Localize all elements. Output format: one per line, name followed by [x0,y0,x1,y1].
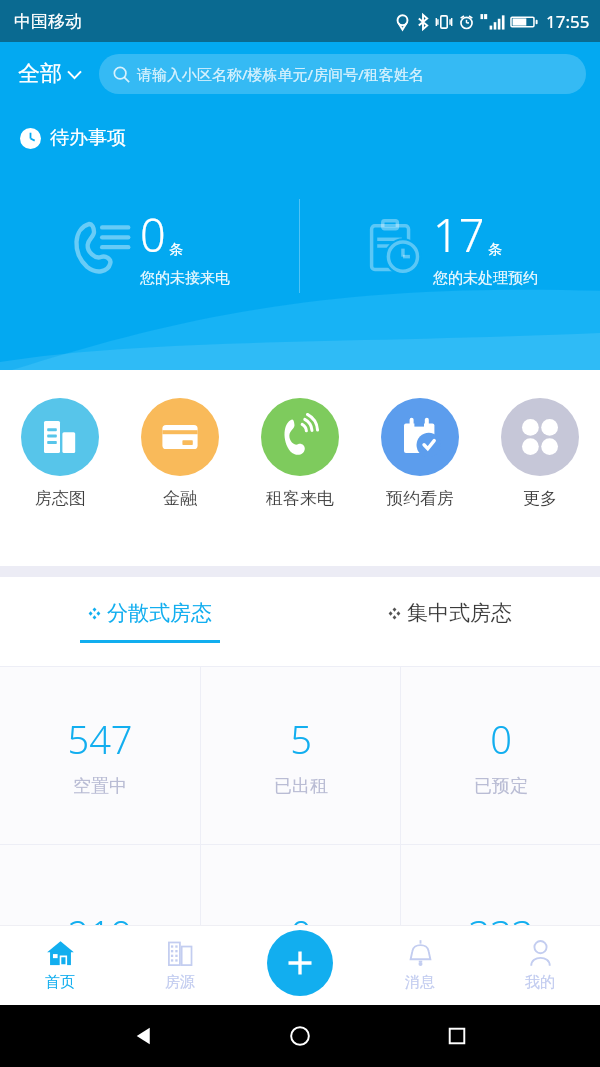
staticText: 更多 [523,488,557,509]
staticText: 空置中 [73,775,127,798]
button[interactable]: 房态图 [0,394,120,513]
button[interactable]: 5 [201,667,400,844]
staticText: 0 [140,204,166,265]
staticText: 房态图 [35,488,86,509]
staticText: 17:55 [546,10,590,33]
button[interactable]: 0 [0,198,299,294]
staticText: 我的 [525,973,555,992]
staticText: 您的未处理预约 [433,269,538,288]
staticText: 首页 [45,973,75,992]
other: Back [131,1023,157,1049]
button[interactable]: 房源 [120,925,240,1005]
button[interactable]: 请输入小区名称/楼栋单元/房间号/租客姓名 [99,54,586,94]
button[interactable]: 更多 [480,394,600,513]
staticText: 全部 [18,60,62,88]
staticText: 547 [67,713,133,765]
button[interactable]: 219 [0,845,200,1022]
button[interactable]: 我的 [480,925,600,1005]
staticText: 待办事项 [50,126,126,150]
button[interactable]: 333 [401,845,600,1022]
button[interactable]: 0 [401,667,600,844]
staticText: 5 [290,713,312,765]
button[interactable]: 首页 [0,925,120,1005]
staticText: 您的未接来电 [140,269,230,288]
button[interactable]: 547 [0,667,200,844]
staticText: 219 [67,908,133,960]
other: Home [287,1023,313,1049]
staticText: 333 [468,908,534,960]
staticText: 已出租 [274,775,328,798]
staticText: 分散式房态 [107,600,212,626]
button[interactable]: 消息 [360,925,480,1005]
button[interactable]: 17 [300,198,600,294]
button[interactable]: 集中式房态 [300,577,600,666]
staticText: 中国移动 [14,11,82,32]
staticText: 条 [169,241,183,259]
button[interactable]: 分散式房态 [0,577,300,666]
staticText: 预约看房 [386,488,454,509]
button[interactable]: 租客来电 [240,394,360,513]
button[interactable]: 预约看房 [360,394,480,513]
other: Recents [444,1023,470,1049]
button[interactable]: 0 [201,845,400,1022]
staticText: 0 [290,908,312,960]
staticText: 条 [488,241,502,259]
staticText: 17 [433,204,485,265]
staticText: 已预定 [474,775,528,798]
staticText: 金融 [163,488,197,509]
button[interactable]: 金融 [120,394,240,513]
staticText: 租客来电 [266,488,334,509]
staticText: 请输入小区名称/楼栋单元/房间号/租客姓名 [137,64,424,84]
staticText: 消息 [405,973,435,992]
button[interactable]: 全部 [14,54,85,94]
button[interactable]: 添加 [267,930,333,996]
staticText: 集中式房态 [407,600,512,626]
staticText: 房源 [165,973,195,992]
staticText: 0 [490,713,512,765]
